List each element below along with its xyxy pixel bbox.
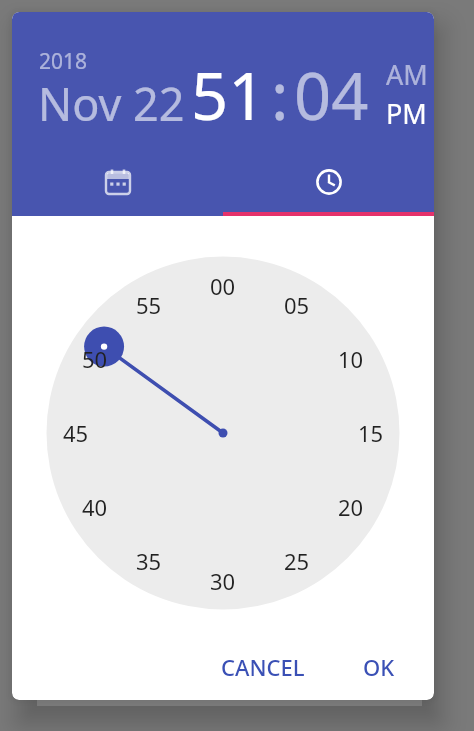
button[interactable]: 00 <box>197 271 249 301</box>
staticText: 25 <box>284 546 310 576</box>
button[interactable]: 50 <box>69 344 121 374</box>
button[interactable]: 05 <box>271 290 323 320</box>
button[interactable]: 45 <box>50 418 102 448</box>
staticText: AM <box>386 56 428 93</box>
button[interactable]: 15 <box>345 418 397 448</box>
staticText: PM <box>386 95 427 132</box>
button[interactable]: 10 <box>325 344 377 374</box>
button[interactable]: 30 <box>197 566 249 596</box>
button[interactable]: AM <box>386 56 428 93</box>
staticText: CANCEL <box>221 652 305 682</box>
staticText: 55 <box>136 290 162 320</box>
staticText: 00 <box>210 271 236 301</box>
button[interactable]: 2018 <box>39 47 88 76</box>
staticText: : <box>271 51 289 140</box>
staticText: OK <box>363 652 395 682</box>
button[interactable]: PM <box>386 95 427 132</box>
button[interactable]: 35 <box>123 546 175 576</box>
staticText: 20 <box>338 492 364 522</box>
button[interactable]: OK <box>351 644 407 690</box>
staticText: 35 <box>136 546 162 576</box>
button[interactable]: CANCEL <box>209 644 317 690</box>
button[interactable]: 55 <box>123 290 175 320</box>
staticText: 10 <box>338 344 364 374</box>
staticText: 45 <box>63 418 89 448</box>
button[interactable]: 20 <box>325 492 377 522</box>
staticText: 30 <box>210 566 236 596</box>
button[interactable]: 51 <box>191 51 266 140</box>
staticText: 15 <box>358 418 384 448</box>
staticText: 50 <box>82 344 108 374</box>
button[interactable]: 40 <box>69 492 121 522</box>
button[interactable] <box>65 154 170 209</box>
button[interactable] <box>276 154 381 209</box>
staticText: 05 <box>284 290 310 320</box>
button[interactable]: 25 <box>271 546 323 576</box>
staticText: 40 <box>82 492 108 522</box>
button[interactable]: Nov 22 <box>38 73 185 134</box>
button[interactable]: 04 <box>294 51 369 140</box>
